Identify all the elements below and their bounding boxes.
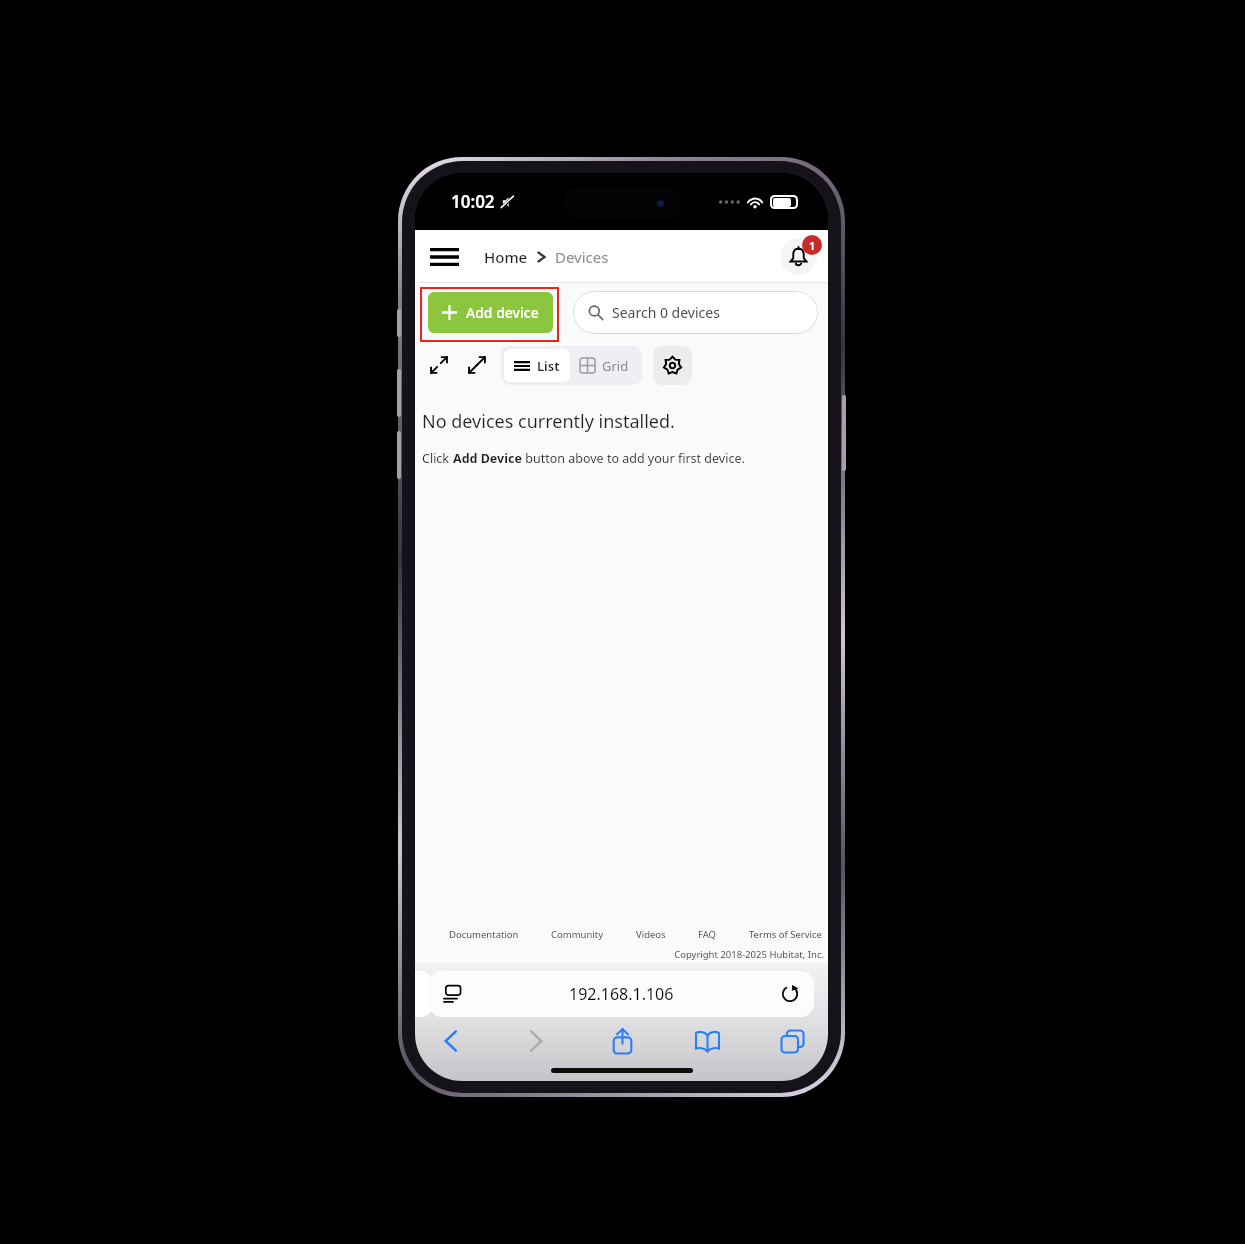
button[interactable]: Bookmarks: [687, 1021, 727, 1061]
button[interactable]: Reload: [781, 985, 799, 1003]
button[interactable]: Terms of Service: [749, 928, 822, 941]
button[interactable]: Back: [431, 1021, 471, 1061]
staticText: No devices currently installed.: [422, 409, 675, 434]
button[interactable]: Devices: [555, 247, 609, 267]
staticText: 10:02: [451, 190, 495, 213]
button[interactable]: Settings: [653, 346, 692, 385]
button[interactable]: Grid: [570, 349, 639, 382]
button[interactable]: Share: [602, 1021, 642, 1061]
button[interactable]: Tabs: [772, 1021, 812, 1061]
staticText: Search 0 devices: [612, 303, 720, 322]
staticText: Click: [422, 450, 453, 467]
button[interactable]: Forward: [516, 1021, 556, 1061]
staticText: Copyright 2018-2025 Hubitat, Inc.: [415, 948, 824, 961]
button[interactable]: Videos: [636, 928, 666, 941]
button[interactable]: Community: [551, 928, 603, 941]
button[interactable]: Search 0 devices: [573, 291, 818, 334]
button[interactable]: Documentation: [449, 928, 519, 941]
button[interactable]: Page settings: [429, 971, 814, 1017]
button[interactable]: FAQ: [698, 928, 717, 941]
button[interactable]: Notifications: [780, 238, 817, 275]
button[interactable]: Add device: [428, 292, 553, 333]
button[interactable]: Expand all: [461, 349, 493, 381]
button[interactable]: Collapse all: [423, 349, 455, 381]
button[interactable]: Home: [484, 247, 528, 267]
staticText: 1: [809, 238, 816, 253]
staticText: Add Device: [453, 450, 522, 467]
staticText: 192.168.1.106: [569, 983, 674, 1005]
button[interactable]: Page settings: [444, 985, 462, 1003]
button[interactable]: List: [504, 349, 570, 382]
staticText: button above to add your first device.: [522, 450, 745, 467]
button[interactable]: Menu: [422, 239, 467, 275]
staticText: List: [537, 357, 560, 375]
staticText: Add device: [466, 303, 539, 322]
staticText: Grid: [602, 357, 629, 375]
